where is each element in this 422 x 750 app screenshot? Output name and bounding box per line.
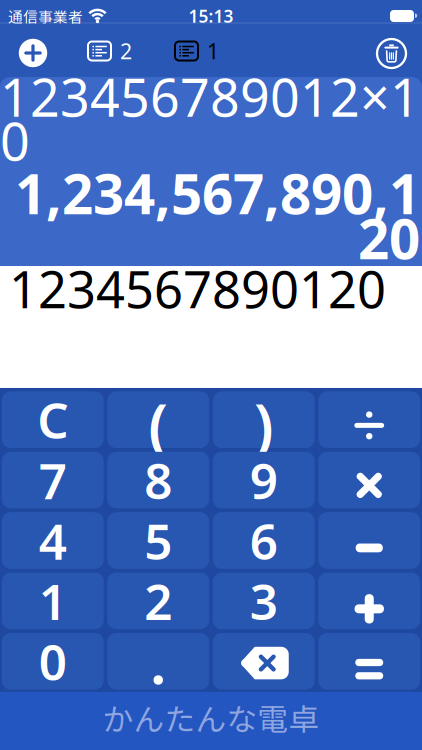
- button[interactable]: Plus: [316, 569, 422, 630]
- button[interactable]: 6: [211, 504, 316, 574]
- staticText: 2: [120, 37, 132, 65]
- staticText: 0: [39, 628, 67, 694]
- staticText: 6: [250, 508, 278, 573]
- button[interactable]: 1: [0, 565, 105, 634]
- button[interactable]: Calculator list 1: [175, 37, 219, 72]
- button[interactable]: 2: [105, 565, 211, 634]
- button[interactable]: 5: [105, 504, 211, 574]
- staticText: 1: [207, 37, 219, 65]
- button[interactable]: Calculator list 2: [88, 37, 132, 72]
- button[interactable]: 8: [105, 444, 211, 513]
- staticText: 20: [358, 202, 420, 274]
- button[interactable]: Divide: [316, 388, 422, 448]
- button[interactable]: 4: [0, 504, 105, 574]
- button[interactable]: 3: [211, 565, 316, 634]
- staticText: 4: [39, 508, 67, 573]
- button[interactable]: Clear: [0, 383, 105, 453]
- staticText: (: [148, 384, 168, 465]
- button[interactable]: Decimal point: [105, 630, 211, 690]
- staticText: 1,234,567,890,1: [15, 157, 420, 229]
- staticText: かんたんな電卓: [102, 695, 319, 740]
- button[interactable]: Add calculator: [18, 38, 48, 71]
- staticText: 123456789012×1: [0, 62, 420, 131]
- staticText: 9: [250, 447, 278, 513]
- button[interactable]: 9: [211, 444, 316, 513]
- button[interactable]: Multiply: [316, 448, 422, 509]
- staticText: 1: [39, 568, 67, 634]
- button[interactable]: かんたんな電卓 banner: [0, 692, 422, 750]
- button[interactable]: 7: [0, 444, 105, 513]
- staticText: 2: [144, 568, 172, 634]
- staticText: 3: [250, 568, 278, 634]
- button[interactable]: Backspace: [211, 630, 316, 690]
- button[interactable]: Equals: [316, 630, 422, 690]
- staticText: 通信事業者: [8, 5, 83, 27]
- staticText: 1234567890120: [9, 255, 386, 322]
- staticText: ): [254, 384, 274, 465]
- button[interactable]: Open parenthesis: [105, 371, 211, 466]
- staticText: C: [37, 387, 68, 452]
- staticText: 7: [39, 447, 67, 513]
- staticText: 8: [144, 447, 172, 513]
- button[interactable]: Close parenthesis: [211, 371, 316, 466]
- button[interactable]: Delete: [376, 38, 407, 71]
- button[interactable]: 0: [0, 625, 105, 694]
- staticText: 0: [0, 106, 30, 175]
- staticText: 15:13: [188, 4, 233, 27]
- button[interactable]: Minus: [316, 509, 422, 569]
- staticText: 5: [144, 508, 172, 573]
